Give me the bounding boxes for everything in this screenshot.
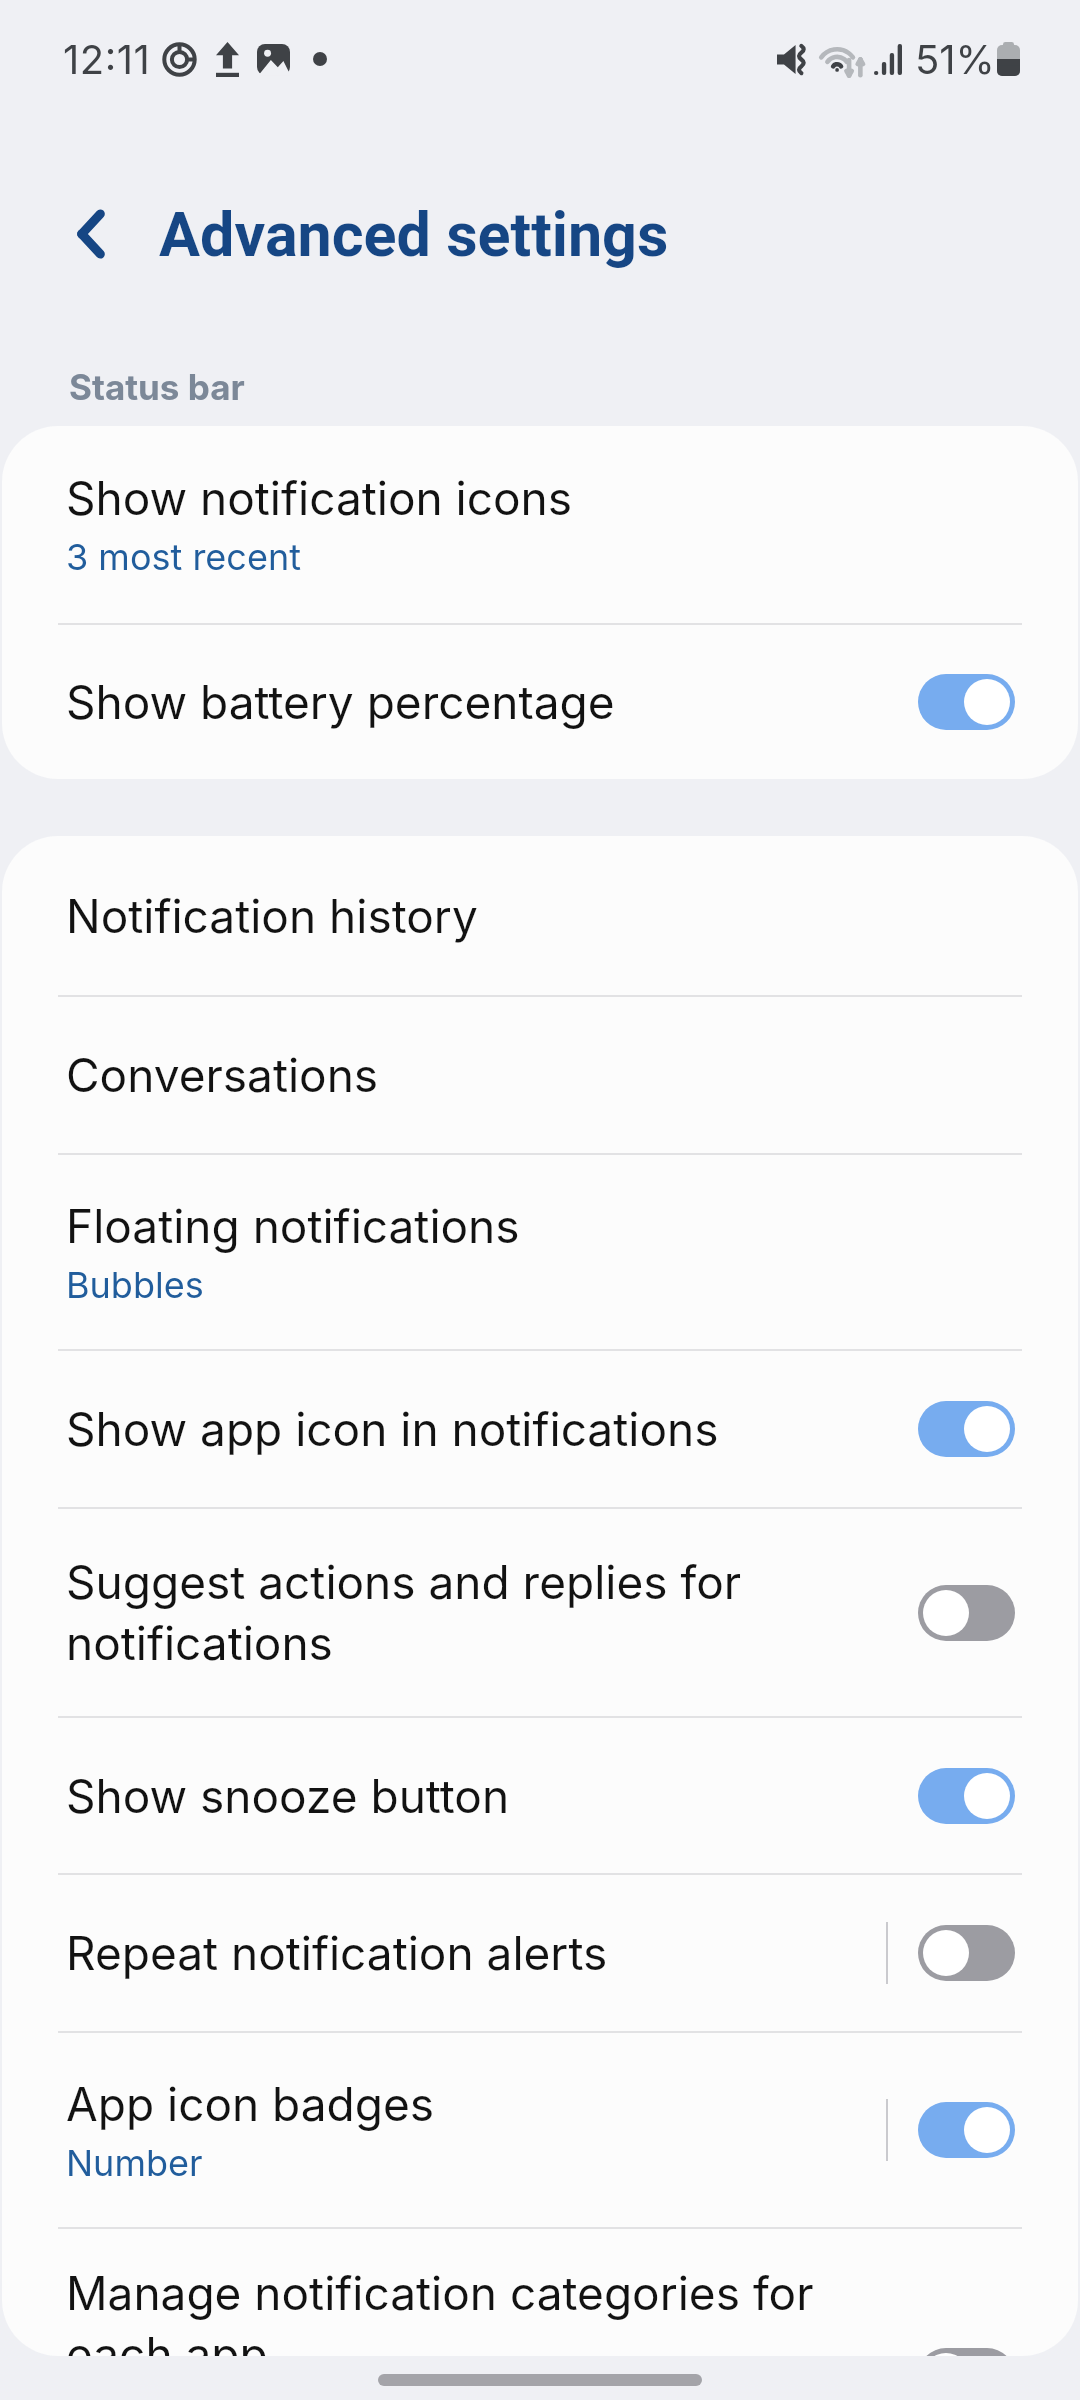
staticText: Show app icon in notifications <box>66 1401 719 1457</box>
button[interactable]: Floating notifications <box>2 1155 1078 1349</box>
button[interactable]: App icon badges <box>2 2033 1078 2227</box>
button[interactable]: Show notification icons <box>2 426 1078 623</box>
staticText: Floating notifications <box>66 1198 520 1254</box>
staticText: Manage notification categories for each … <box>66 2265 856 2356</box>
button[interactable]: Suggest actions and replies for notifica… <box>2 1509 1078 1716</box>
button[interactable]: Conversations <box>2 997 1078 1153</box>
button[interactable]: Switch off <box>918 1925 1015 1981</box>
button[interactable]: Switch off <box>918 1585 1015 1641</box>
staticText: Status bar <box>69 366 245 408</box>
button[interactable]: Repeat notification alerts <box>2 1875 1078 2031</box>
button[interactable]: Manage notification categories for each … <box>2 2229 1078 2356</box>
button[interactable]: Switch on <box>918 1768 1015 1824</box>
button[interactable]: Switch off <box>918 2348 1015 2356</box>
button[interactable]: Switch on <box>918 2102 1015 2158</box>
button[interactable]: Notification history <box>2 836 1078 995</box>
staticText: 3 most recent <box>66 535 301 579</box>
staticText: Notification history <box>66 888 478 944</box>
button[interactable]: Switch on <box>918 674 1015 730</box>
staticText: Repeat notification alerts <box>66 1925 608 1981</box>
staticText: Conversations <box>66 1047 379 1103</box>
staticText: App icon badges <box>66 2076 435 2132</box>
staticText: Show notification icons <box>66 470 573 526</box>
button[interactable]: Switch on <box>918 1401 1015 1457</box>
button[interactable]: Navigate up <box>53 196 129 272</box>
staticText: 12:11 <box>63 35 151 83</box>
button[interactable]: Show battery percentage <box>2 625 1078 779</box>
staticText: Number <box>66 2141 203 2185</box>
staticText: Bubbles <box>66 1263 204 1307</box>
staticText: Show battery percentage <box>66 674 615 730</box>
button[interactable]: Show app icon in notifications <box>2 1351 1078 1507</box>
staticText: Advanced settings <box>159 199 669 270</box>
staticText: Suggest actions and replies for notifica… <box>66 1554 856 1671</box>
staticText: Show snooze button <box>66 1768 510 1824</box>
button[interactable]: Show snooze button <box>2 1718 1078 1873</box>
staticText: 51% <box>915 35 995 83</box>
